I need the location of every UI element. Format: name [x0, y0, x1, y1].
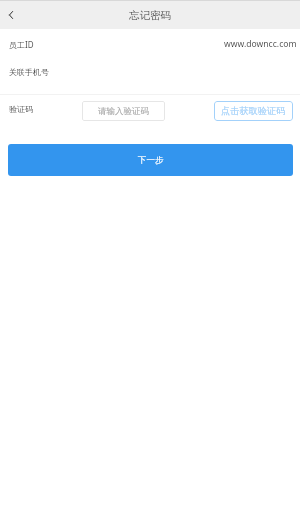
staticText: 关联手机号	[9, 67, 49, 77]
button[interactable]: 下一步	[8, 144, 293, 176]
staticText: 请输入验证码	[98, 106, 149, 117]
staticText: 验证码	[9, 104, 33, 114]
staticText: 忘记密码	[129, 9, 171, 22]
staticText: 点击获取验证码	[221, 105, 286, 117]
button[interactable]: 关联手机号	[0, 58, 300, 86]
button[interactable]: Back	[0, 1, 26, 29]
staticText: www.downcc.com	[224, 38, 297, 50]
button[interactable]: 请输入验证码	[82, 101, 165, 121]
staticText: 员工ID	[9, 39, 34, 50]
button[interactable]: 点击获取验证码	[214, 101, 293, 121]
staticText: 下一步	[138, 155, 164, 166]
button[interactable]: 员工ID	[0, 30, 300, 58]
